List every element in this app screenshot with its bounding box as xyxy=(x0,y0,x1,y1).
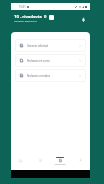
button[interactable]: Reclamos cerrados xyxy=(15,69,86,82)
staticText: GENERAL BELGRANO xyxy=(14,20,37,23)
staticText: Reclamos cerrados xyxy=(27,74,51,78)
staticText: Generar solicitud xyxy=(27,44,48,48)
staticText: 0 xyxy=(44,14,47,20)
staticText: Reclamos en curso xyxy=(27,59,50,63)
staticText: 16:01 xyxy=(19,5,26,9)
button[interactable]: Generar solicitud xyxy=(15,39,86,52)
staticText: Solicitudes xyxy=(54,163,66,166)
button[interactable]: Solicitudes xyxy=(50,155,70,170)
button[interactable]: Menu xyxy=(49,15,54,20)
staticText: 10 - rivadavia xyxy=(14,14,42,20)
button[interactable]: Notifications xyxy=(79,15,87,23)
button[interactable]: Reclamos en curso xyxy=(15,54,86,67)
